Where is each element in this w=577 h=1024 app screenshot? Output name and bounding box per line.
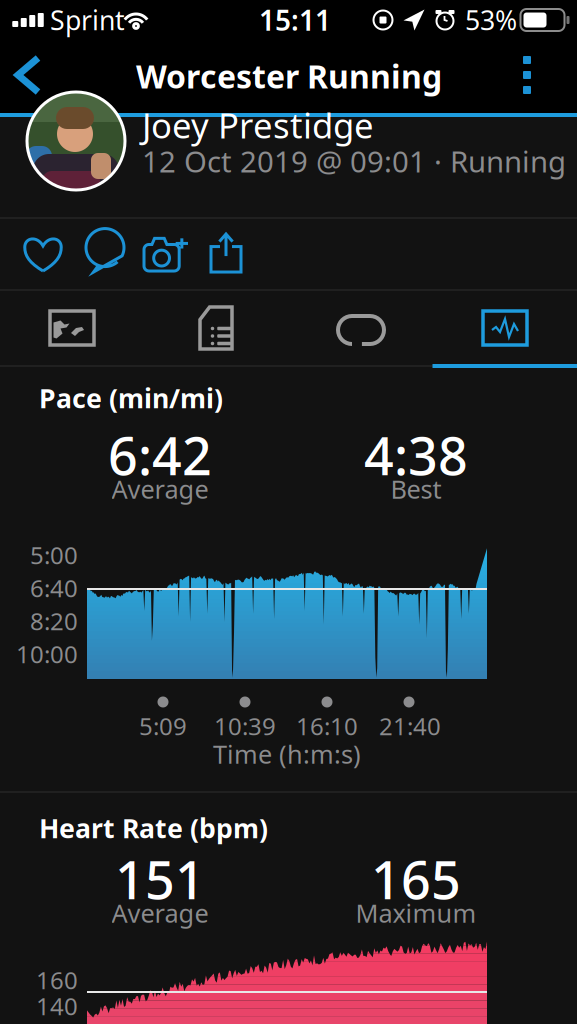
button[interactable]: Like <box>12 219 74 289</box>
staticText: 151 <box>115 844 205 914</box>
staticText: 10:00 <box>16 638 78 670</box>
button[interactable]: Add photo <box>135 219 197 289</box>
staticText: 4:38 <box>364 420 468 490</box>
staticText: Best <box>390 472 441 506</box>
staticText: 8:20 <box>30 605 78 637</box>
button[interactable]: Laps <box>289 293 433 367</box>
staticText: 53% <box>465 2 517 38</box>
staticText: Worcester Running <box>136 55 442 97</box>
button[interactable]: Map <box>0 291 144 365</box>
staticText: 160 <box>36 964 78 996</box>
staticText: 6:42 <box>108 420 212 490</box>
staticText: 15:11 <box>259 1 331 39</box>
staticText: Joey Prestidge <box>142 102 374 148</box>
staticText: Heart Rate (bpm) <box>39 810 268 846</box>
staticText: 140 <box>36 990 78 1022</box>
staticText: Sprint <box>50 2 125 38</box>
staticText: Time (h:m:s) <box>213 737 361 771</box>
staticText: 165 <box>371 844 461 914</box>
button[interactable]: More options <box>499 41 555 109</box>
staticText: 21:40 <box>379 710 441 742</box>
staticText: 6:40 <box>30 572 78 604</box>
staticText: 5:09 <box>139 710 187 742</box>
button[interactable]: Comment <box>74 217 136 287</box>
staticText: 12 Oct 2019 @ 09:01 · Running <box>142 141 566 180</box>
staticText: Pace (min/mi) <box>39 380 223 416</box>
button[interactable]: Share <box>195 218 257 288</box>
button[interactable]: Back <box>0 41 59 109</box>
button[interactable]: Details <box>144 291 288 365</box>
staticText: Average <box>111 896 208 930</box>
staticText: 5:00 <box>30 539 78 571</box>
staticText: Maximum <box>355 896 476 930</box>
button[interactable]: Charts <box>433 291 577 365</box>
staticText: Average <box>111 472 208 506</box>
staticText: 10:39 <box>214 710 276 742</box>
staticText: 16:10 <box>296 710 358 742</box>
